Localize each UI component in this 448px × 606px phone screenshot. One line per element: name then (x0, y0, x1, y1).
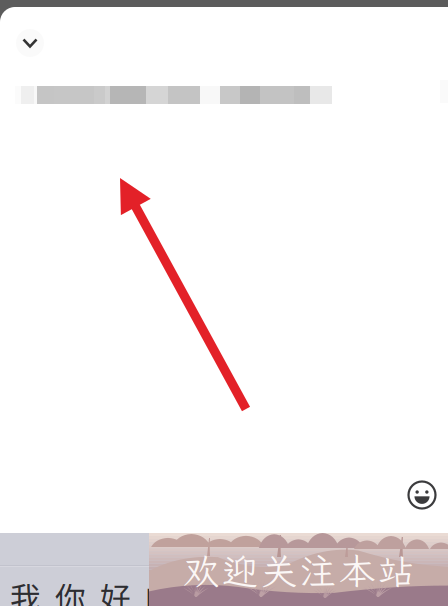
button[interactable]: 的 (138, 566, 183, 606)
staticText: 是 (190, 574, 221, 606)
staticText: 好 (100, 574, 131, 606)
button[interactable]: 我 (3, 566, 48, 606)
staticText: 我 (10, 574, 41, 606)
button[interactable]: 你 (48, 566, 93, 606)
staticText: 关 (261, 547, 297, 594)
staticText: 本 (339, 547, 375, 594)
staticText: 站 (378, 547, 414, 594)
button[interactable]: 是 (183, 566, 228, 606)
button[interactable]: Collapse (9, 22, 51, 64)
button[interactable]: Emoji (400, 473, 444, 517)
staticText: 欢 (183, 547, 219, 594)
button[interactable]: 好 (93, 566, 138, 606)
staticText: 你 (55, 574, 86, 606)
staticText: 迎 (222, 547, 258, 594)
staticText: 注 (300, 547, 336, 594)
staticText: 的 (145, 574, 176, 606)
